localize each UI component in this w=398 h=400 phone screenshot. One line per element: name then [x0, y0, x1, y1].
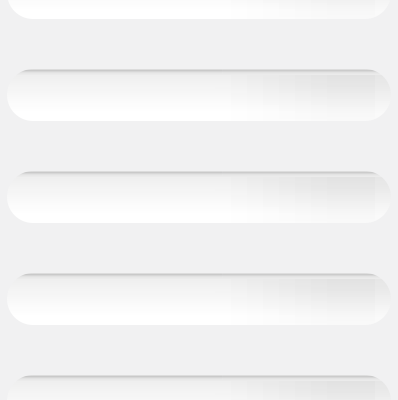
button[interactable]	[7, 273, 391, 325]
button[interactable]	[7, 171, 391, 223]
button[interactable]	[7, 0, 391, 19]
button[interactable]	[7, 375, 391, 400]
button[interactable]	[7, 69, 391, 121]
